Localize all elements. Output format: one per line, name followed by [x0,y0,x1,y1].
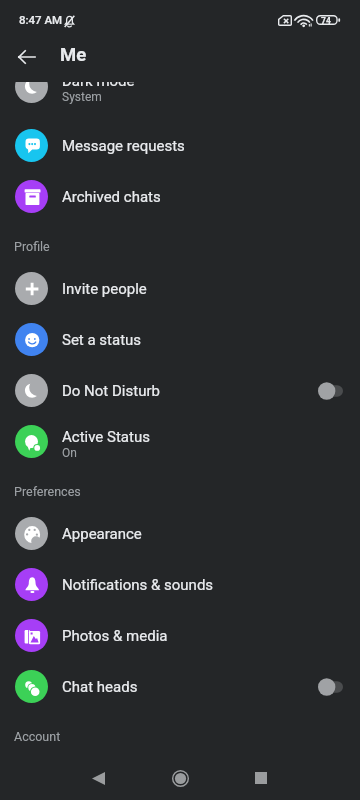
button[interactable]: Back [6,37,46,77]
staticText: Photos & media [62,627,168,645]
button[interactable]: Archived chats [0,171,360,222]
staticText: System [62,90,102,104]
staticText: Message requests [62,137,185,155]
staticText: Active Status [62,428,150,446]
staticText: Account [14,729,61,744]
button[interactable]: Chat heads [0,661,360,712]
staticText: Invite people [62,280,147,298]
staticText: Do Not Disturb [62,382,160,400]
button[interactable]: Photos & media [0,610,360,661]
button[interactable]: Home [156,754,204,800]
staticText: Me [60,44,87,66]
button[interactable]: Back [74,754,122,800]
staticText: Notifications & sounds [62,576,214,594]
button[interactable]: Notifications & sounds [0,559,360,610]
staticText: Archived chats [62,188,161,206]
button[interactable]: Set a status [0,314,360,365]
staticText: Dark mode [62,82,135,90]
button[interactable]: Message requests [0,120,360,171]
button[interactable]: Invite people [0,263,360,314]
staticText: 8:47 AM [19,13,63,26]
button[interactable]: Dark mode [0,82,360,115]
button[interactable]: Appearance [0,508,360,559]
staticText: Chat heads [62,678,138,696]
button[interactable]: Recent apps [237,754,285,800]
staticText: Set a status [62,331,142,349]
button[interactable]: Active Status [0,416,360,467]
button[interactable]: Do Not Disturb [0,365,360,416]
staticText: Preferences [14,484,81,499]
staticText: Profile [14,239,50,254]
staticText: 74 [321,16,331,26]
staticText: On [62,446,77,460]
staticText: Appearance [62,525,142,543]
